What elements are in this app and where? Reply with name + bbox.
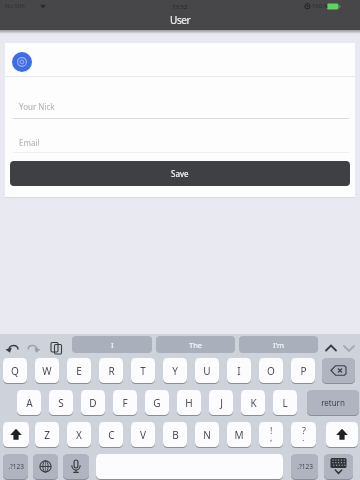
staticText: No SIM — [5, 2, 25, 10]
button[interactable]: Q — [3, 358, 27, 383]
staticText: P — [300, 364, 307, 378]
button[interactable]: P — [291, 358, 315, 383]
button[interactable]: .?123 — [291, 454, 318, 479]
staticText: O — [267, 364, 275, 378]
button[interactable]: I'm — [239, 336, 318, 353]
staticText: F — [122, 396, 128, 410]
staticText: M — [234, 428, 244, 442]
staticText: return — [321, 397, 345, 408]
staticText: V — [140, 428, 146, 442]
button[interactable]: D — [81, 390, 105, 415]
button[interactable]: A — [17, 390, 41, 415]
button[interactable]: W — [35, 358, 59, 383]
button[interactable]: I — [227, 358, 251, 383]
staticText: Z — [44, 428, 50, 442]
button[interactable]: E — [67, 358, 91, 383]
staticText: Y — [172, 364, 178, 378]
button[interactable]: B — [163, 422, 187, 447]
staticText: R — [108, 364, 115, 378]
staticText: C — [108, 428, 115, 442]
button[interactable] — [326, 422, 358, 447]
button[interactable]: T — [131, 358, 155, 383]
button[interactable]: J — [209, 390, 233, 415]
staticText: G — [153, 396, 161, 410]
staticText: H — [185, 396, 193, 410]
staticText: D — [89, 396, 97, 410]
staticText: X — [76, 428, 82, 442]
button[interactable]: I — [72, 336, 152, 353]
staticText: User — [170, 13, 191, 27]
staticText: S — [58, 396, 64, 410]
button[interactable] — [3, 422, 29, 447]
staticText: Q — [11, 364, 19, 378]
button[interactable] — [96, 454, 283, 479]
staticText: ? — [302, 424, 306, 436]
staticText: Your Nick — [19, 101, 55, 112]
staticText: Email — [19, 137, 40, 148]
button[interactable] — [33, 454, 58, 479]
button[interactable]: O — [259, 358, 283, 383]
button[interactable]: Save — [10, 161, 350, 186]
staticText: I'm — [273, 340, 285, 350]
button[interactable]: L — [273, 390, 297, 415]
button[interactable]: M — [227, 422, 251, 447]
button[interactable]: V — [131, 422, 155, 447]
button[interactable] — [322, 358, 355, 383]
button[interactable]: S — [49, 390, 73, 415]
button[interactable]: R — [99, 358, 123, 383]
button[interactable]: ? — [291, 422, 316, 447]
button[interactable]: F — [113, 390, 137, 415]
button[interactable]: U — [195, 358, 219, 383]
button[interactable]: H — [177, 390, 201, 415]
button[interactable]: Z — [35, 422, 59, 447]
staticText: N — [203, 428, 211, 442]
staticText: U — [203, 364, 211, 378]
staticText: W — [42, 364, 52, 378]
button[interactable]: .?123 — [3, 454, 28, 479]
staticText: L — [282, 396, 288, 410]
staticText: .?123 — [8, 462, 24, 471]
button[interactable] — [63, 454, 89, 479]
staticText: J — [220, 396, 223, 410]
button[interactable]: The — [156, 336, 235, 353]
staticText: The — [189, 340, 203, 350]
staticText: Save — [171, 168, 189, 179]
staticText: . — [302, 431, 305, 443]
button[interactable]: ! — [259, 422, 283, 447]
button[interactable]: N — [195, 422, 219, 447]
staticText: 17:52 — [172, 3, 188, 11]
staticText: I — [111, 340, 114, 350]
button[interactable] — [12, 52, 33, 73]
button[interactable]: X — [67, 422, 91, 447]
button[interactable]: return — [307, 390, 359, 415]
button[interactable]: Y — [163, 358, 187, 383]
staticText: .?123 — [297, 462, 313, 471]
staticText: B — [172, 428, 179, 442]
staticText: , — [270, 431, 273, 443]
staticText: E — [76, 364, 82, 378]
button[interactable] — [324, 454, 353, 479]
staticText: K — [250, 396, 257, 410]
staticText: T — [140, 364, 146, 378]
staticText: 100 % — [312, 2, 329, 10]
button[interactable]: G — [145, 390, 169, 415]
staticText: A — [26, 396, 33, 410]
button[interactable]: K — [241, 390, 265, 415]
button[interactable]: C — [99, 422, 123, 447]
staticText: I — [237, 364, 241, 378]
staticText: ! — [270, 424, 273, 436]
